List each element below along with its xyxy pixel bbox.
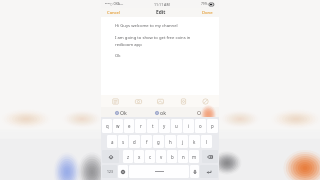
- staticText: Done: [202, 10, 213, 16]
- staticText: ok: [160, 109, 166, 116]
- button[interactable]: Photo: [155, 96, 165, 106]
- staticText: Cancel: [107, 10, 121, 16]
- staticText: j: [182, 139, 184, 145]
- button[interactable]: r: [135, 119, 146, 133]
- staticText: n: [182, 154, 185, 160]
- button[interactable]: y: [159, 119, 170, 133]
- button[interactable]: m: [189, 150, 199, 163]
- staticText: h: [169, 139, 172, 145]
- staticText: ••••○ OKA—: [105, 2, 124, 6]
- button[interactable]: f: [141, 135, 152, 148]
- button[interactable]: p: [207, 119, 218, 133]
- button[interactable]: u: [171, 119, 182, 133]
- button[interactable]: b: [167, 150, 177, 163]
- button[interactable]: l: [201, 135, 212, 148]
- staticText: Hi Guys welcome to my channel: [115, 23, 178, 29]
- button[interactable]: g: [153, 135, 164, 148]
- staticText: a: [111, 139, 114, 145]
- staticText: d: [133, 139, 136, 145]
- button[interactable]: h: [165, 135, 176, 148]
- staticText: v: [160, 154, 163, 160]
- staticText: z: [127, 154, 130, 160]
- button[interactable]: Markup: [200, 96, 210, 106]
- button[interactable]: O: [180, 107, 219, 117]
- staticText: 79%: [201, 2, 208, 6]
- button[interactable]: c: [145, 150, 155, 163]
- staticText: w: [116, 123, 120, 129]
- staticText: f: [146, 139, 148, 145]
- staticText: 123: [107, 169, 113, 174]
- button[interactable]: t: [147, 119, 158, 133]
- button[interactable]: Checklist: [110, 96, 120, 106]
- button[interactable]: Scan: [178, 96, 188, 106]
- staticText: i: [188, 123, 190, 129]
- staticText: Ok: [115, 53, 121, 59]
- staticText: Edit: [156, 9, 166, 16]
- button[interactable]: j: [177, 135, 188, 148]
- button[interactable]: q: [102, 119, 112, 133]
- staticText: m: [192, 154, 197, 160]
- staticText: u: [175, 123, 178, 129]
- button[interactable]: z: [123, 150, 133, 163]
- staticText: b: [171, 154, 174, 160]
- button[interactable]: k: [189, 135, 200, 148]
- staticText: o: [199, 123, 202, 129]
- staticText: O: [197, 109, 202, 116]
- button[interactable]: Return: [200, 165, 218, 178]
- button[interactable]: Cancel: [105, 9, 123, 17]
- button[interactable]: d: [129, 135, 140, 148]
- button[interactable]: s: [118, 135, 128, 148]
- button[interactable]: w: [113, 119, 123, 133]
- staticText: I am going to show to get free coins in …: [115, 35, 191, 48]
- button[interactable]: Format: [133, 96, 143, 106]
- button[interactable]: x: [134, 150, 144, 163]
- staticText: x: [138, 154, 141, 160]
- staticText: s: [122, 139, 125, 145]
- button[interactable]: 123: [102, 165, 117, 178]
- staticText: q: [106, 123, 109, 129]
- button[interactable]: Space: [129, 165, 189, 178]
- button[interactable]: ok: [141, 107, 180, 117]
- button[interactable]: Backspace: [202, 150, 218, 163]
- staticText: r: [140, 123, 142, 129]
- button[interactable]: Shift: [102, 150, 119, 163]
- button[interactable]: n: [178, 150, 188, 163]
- button[interactable]: Done: [200, 9, 215, 17]
- staticText: Ok: [120, 109, 127, 116]
- staticText: e: [128, 123, 131, 129]
- staticText: k: [193, 139, 196, 145]
- button[interactable]: o: [195, 119, 206, 133]
- button[interactable]: Dictation: [190, 165, 199, 178]
- staticText: 11:11 AM: [154, 2, 170, 7]
- staticText: t: [152, 123, 154, 129]
- staticText: c: [149, 154, 152, 160]
- staticText: g: [157, 139, 160, 145]
- button[interactable]: e: [124, 119, 134, 133]
- staticText: l: [206, 139, 208, 145]
- button[interactable]: Ok: [101, 107, 141, 117]
- staticText: y: [163, 123, 166, 129]
- button[interactable]: i: [183, 119, 194, 133]
- staticText: p: [211, 123, 214, 129]
- button[interactable]: Emoji keyboard: [118, 165, 128, 178]
- button[interactable]: a: [107, 135, 117, 148]
- button[interactable]: v: [156, 150, 166, 163]
